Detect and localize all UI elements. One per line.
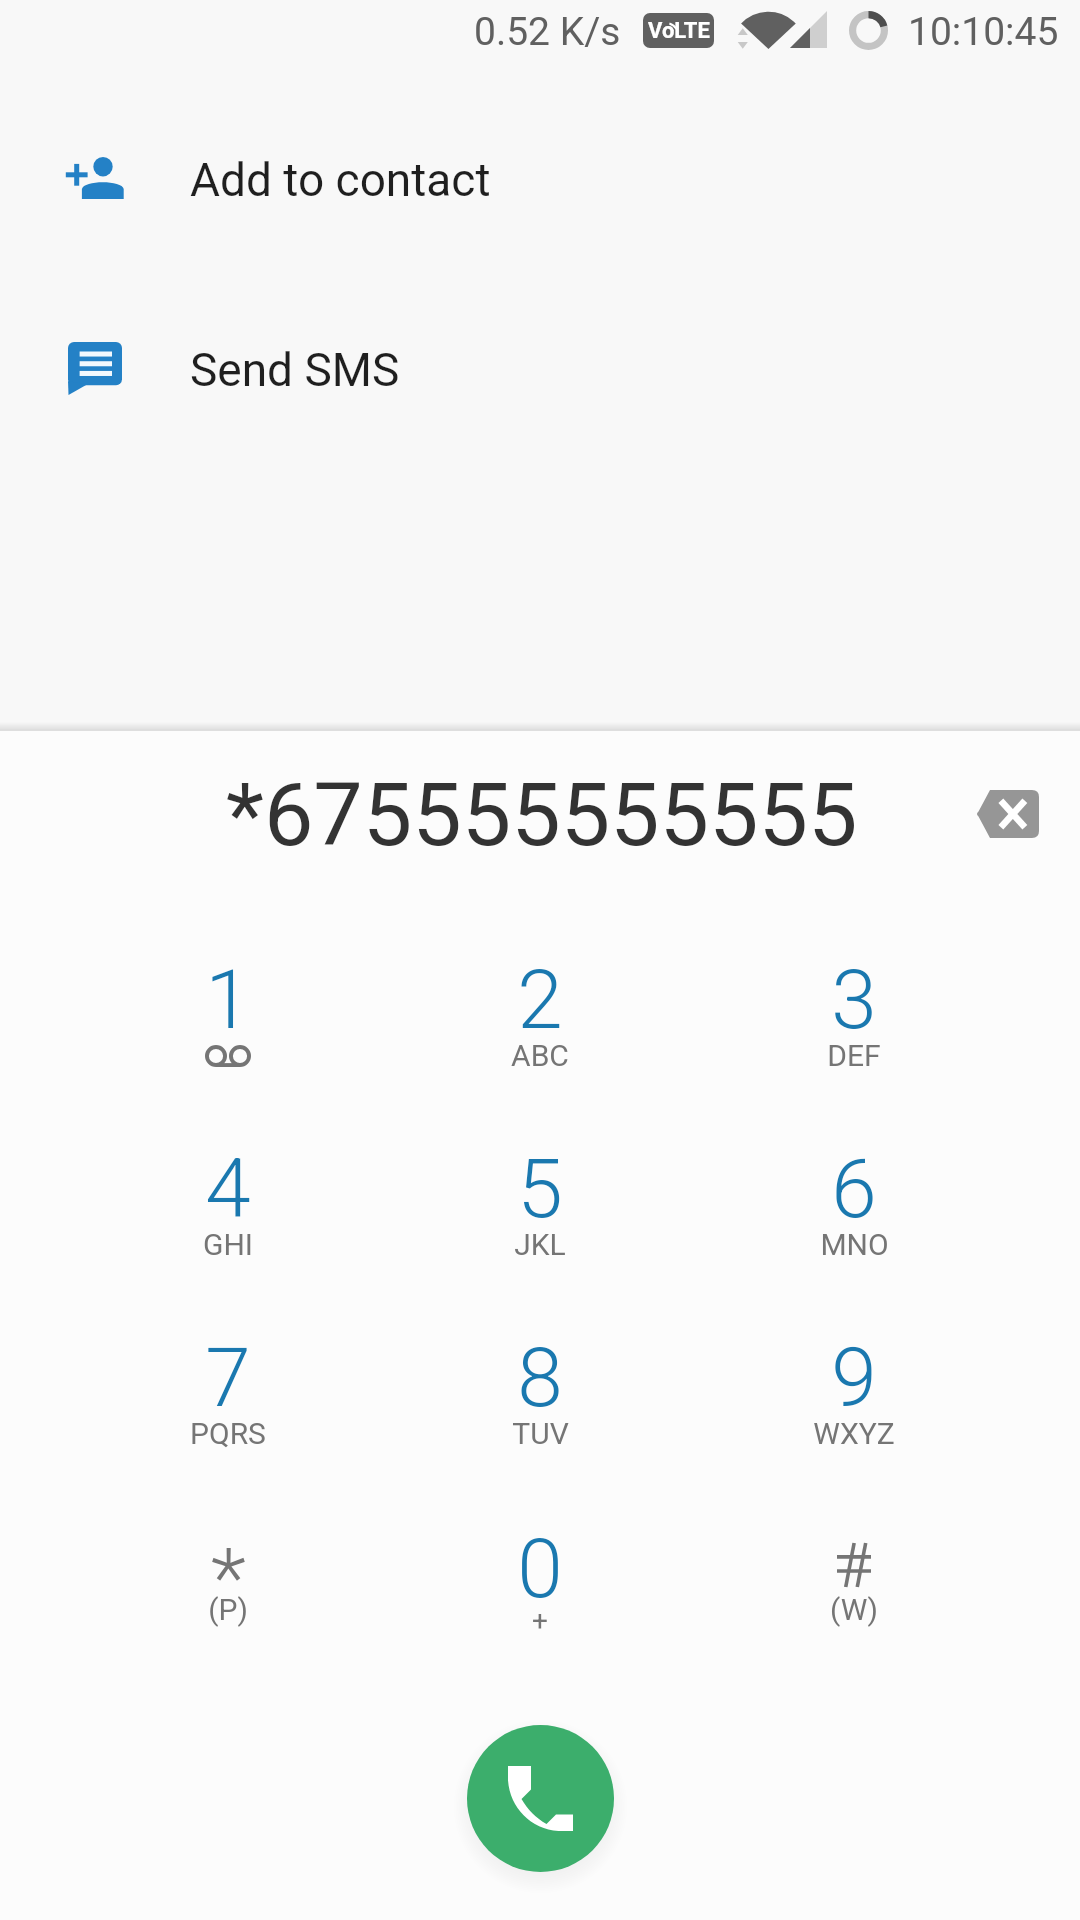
button[interactable]: 9	[764, 1328, 944, 1518]
staticText: Send SMS	[190, 343, 400, 397]
staticText: 10:10:45	[908, 9, 1059, 55]
staticText: 6	[831, 1141, 877, 1237]
staticText: JKL	[514, 1227, 566, 1262]
other: Hash	[764, 1543, 944, 1587]
button[interactable]: 6	[764, 1139, 944, 1329]
staticText: *	[211, 1530, 246, 1626]
staticText: 0	[517, 1521, 563, 1617]
staticText: 3	[831, 952, 877, 1048]
button[interactable]: Add to contact	[0, 120, 1080, 240]
button[interactable]: 4	[138, 1139, 318, 1329]
staticText: Add to contact	[190, 153, 491, 207]
staticText: ABC	[511, 1038, 569, 1073]
staticText: 4	[205, 1141, 251, 1237]
button[interactable]: 5	[450, 1139, 630, 1329]
button[interactable]: 0	[450, 1519, 630, 1709]
staticText: (W)	[830, 1592, 878, 1627]
button[interactable]: Call	[467, 1725, 614, 1872]
button[interactable]: Send SMS	[0, 310, 1080, 430]
staticText: 7	[205, 1330, 251, 1426]
staticText: 5	[517, 1141, 563, 1237]
button[interactable]: 3	[764, 950, 944, 1140]
staticText: TUV	[512, 1416, 569, 1451]
staticText: 0.52 K/s	[474, 9, 621, 55]
button[interactable]: 1	[138, 950, 318, 1140]
button[interactable]: Hash	[764, 1519, 944, 1709]
staticText: 9	[831, 1330, 877, 1426]
staticText: MNO	[820, 1227, 889, 1262]
staticText: 2	[517, 952, 563, 1048]
staticText: DEF	[827, 1038, 881, 1073]
button[interactable]: 2	[450, 950, 630, 1140]
staticText: 8	[517, 1330, 563, 1426]
staticText: GHI	[203, 1227, 253, 1262]
button[interactable]: 7	[138, 1328, 318, 1518]
staticText: +	[532, 1604, 548, 1637]
staticText: WXYZ	[813, 1416, 895, 1451]
staticText: *675555555555	[226, 763, 858, 866]
staticText: VoLTE	[648, 18, 710, 44]
button[interactable]: Backspace	[957, 764, 1057, 864]
button[interactable]: *	[138, 1519, 318, 1709]
staticText: (P)	[208, 1592, 248, 1627]
staticText: 1	[205, 952, 251, 1048]
staticText: PQRS	[190, 1416, 266, 1451]
button[interactable]: 8	[450, 1328, 630, 1518]
